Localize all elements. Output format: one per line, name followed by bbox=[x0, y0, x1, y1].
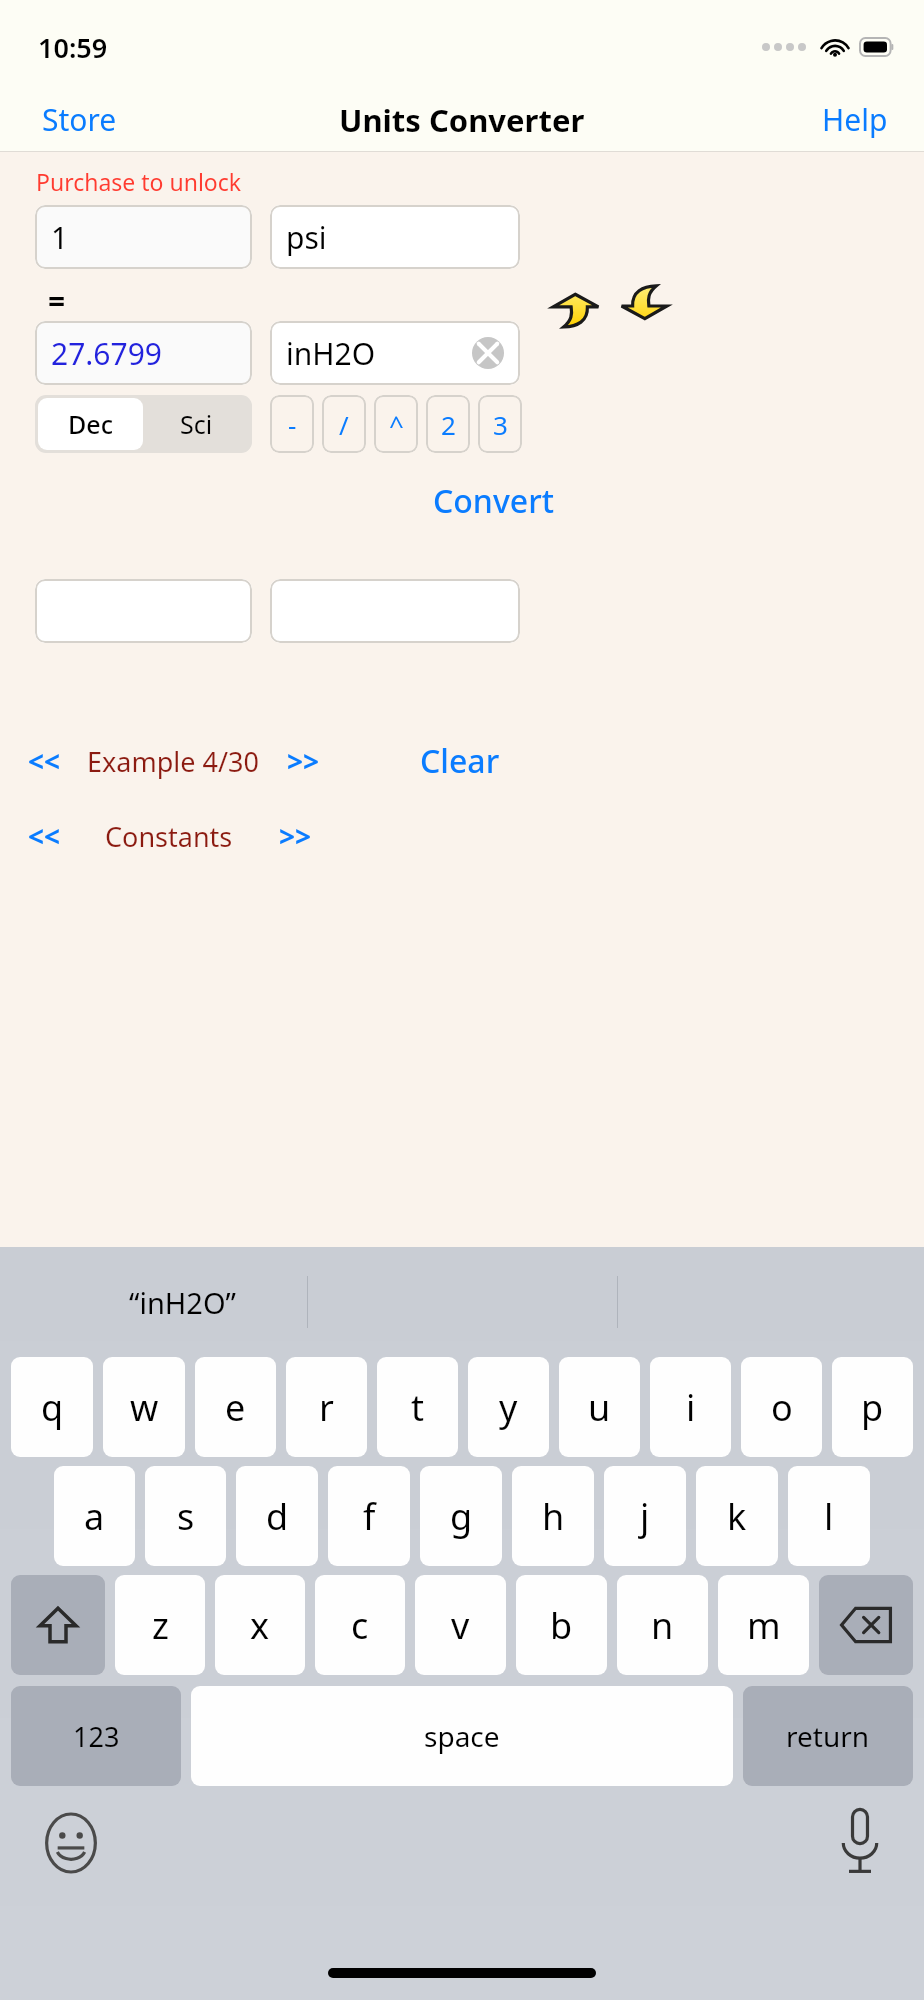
staticText: Clear bbox=[420, 739, 500, 783]
button[interactable]: << bbox=[22, 736, 67, 786]
button[interactable]: 27.6799 bbox=[35, 321, 252, 385]
staticText: 2 bbox=[441, 407, 456, 442]
button[interactable]: p bbox=[832, 1357, 913, 1457]
staticText: inH2O bbox=[286, 333, 376, 374]
button[interactable]: i bbox=[650, 1357, 731, 1457]
staticText: Convert bbox=[433, 479, 554, 523]
staticText: n bbox=[651, 1601, 674, 1650]
staticText: 3 bbox=[493, 407, 508, 442]
staticText: s bbox=[177, 1492, 195, 1541]
button[interactable]: << bbox=[22, 811, 67, 861]
staticText: o bbox=[771, 1383, 793, 1432]
staticText: psi bbox=[286, 217, 327, 258]
staticText: - bbox=[288, 407, 297, 442]
staticText: 123 bbox=[73, 1718, 120, 1755]
button[interactable]: Shift bbox=[11, 1575, 105, 1675]
button[interactable]: z bbox=[115, 1575, 205, 1675]
staticText: Purchase to unlock bbox=[36, 166, 242, 197]
button[interactable]: Swap units bbox=[552, 285, 668, 327]
button[interactable]: Store bbox=[0, 91, 159, 148]
button[interactable]: Dec bbox=[38, 398, 143, 450]
staticText: z bbox=[152, 1601, 169, 1650]
button[interactable]: y bbox=[468, 1357, 549, 1457]
button[interactable]: ^ bbox=[374, 395, 418, 453]
button[interactable]: j bbox=[604, 1466, 686, 1566]
staticText: c bbox=[351, 1601, 369, 1650]
staticText: l bbox=[824, 1492, 834, 1541]
staticText: a bbox=[84, 1492, 105, 1541]
button[interactable]: 2 bbox=[426, 395, 470, 453]
button[interactable]: c bbox=[315, 1575, 405, 1675]
staticText: u bbox=[588, 1383, 611, 1432]
button[interactable]: n bbox=[617, 1575, 708, 1675]
button[interactable]: m bbox=[718, 1575, 809, 1675]
staticText: w bbox=[130, 1383, 159, 1432]
staticText: Example 4/30 bbox=[87, 743, 259, 780]
staticText: “inH2O” bbox=[129, 1283, 236, 1322]
staticText: = bbox=[48, 280, 66, 321]
button[interactable]: o bbox=[741, 1357, 822, 1457]
button[interactable]: d bbox=[236, 1466, 318, 1566]
staticText: x bbox=[250, 1601, 270, 1650]
button[interactable]: 123 bbox=[11, 1686, 181, 1786]
staticText: Store bbox=[42, 99, 117, 140]
button[interactable]: h bbox=[512, 1466, 594, 1566]
staticText: d bbox=[266, 1492, 289, 1541]
button[interactable]: k bbox=[696, 1466, 778, 1566]
button[interactable]: b bbox=[516, 1575, 607, 1675]
button[interactable]: Convert bbox=[423, 473, 564, 529]
button[interactable]: Backspace bbox=[819, 1575, 913, 1675]
button[interactable]: psi bbox=[270, 205, 520, 269]
button[interactable]: inH2O bbox=[270, 321, 520, 385]
staticText: << bbox=[28, 817, 61, 855]
button[interactable]: q bbox=[11, 1357, 93, 1457]
button[interactable]: space bbox=[191, 1686, 733, 1786]
button[interactable]: a bbox=[54, 1466, 135, 1566]
button[interactable]: w bbox=[103, 1357, 185, 1457]
staticText: / bbox=[339, 407, 349, 442]
staticText: e bbox=[225, 1383, 246, 1432]
button[interactable]: Help bbox=[786, 91, 924, 148]
button[interactable]: 3 bbox=[478, 395, 522, 453]
staticText: >> bbox=[287, 742, 320, 780]
button[interactable]: Example 4/30 bbox=[87, 737, 259, 786]
button[interactable]: Clear unit bbox=[472, 337, 504, 369]
button[interactable]: e bbox=[195, 1357, 276, 1457]
button[interactable]: Dictation bbox=[838, 1808, 882, 1874]
staticText: >> bbox=[279, 817, 312, 855]
button[interactable]: / bbox=[322, 395, 366, 453]
button[interactable]: g bbox=[420, 1466, 502, 1566]
button[interactable]: Sci bbox=[143, 398, 249, 450]
staticText: Constants bbox=[105, 818, 233, 855]
button[interactable]: >> bbox=[273, 811, 318, 861]
button[interactable]: r bbox=[286, 1357, 367, 1457]
button[interactable]: >> bbox=[281, 736, 326, 786]
button[interactable] bbox=[35, 579, 252, 643]
staticText: space bbox=[424, 1717, 500, 1755]
button[interactable]: t bbox=[377, 1357, 458, 1457]
staticText: k bbox=[727, 1492, 747, 1541]
staticText: m bbox=[747, 1601, 781, 1650]
button[interactable]: f bbox=[328, 1466, 410, 1566]
button[interactable]: Constants bbox=[105, 812, 233, 861]
staticText: v bbox=[451, 1601, 470, 1650]
staticText: j bbox=[640, 1492, 650, 1541]
button[interactable]: return bbox=[743, 1686, 913, 1786]
button[interactable]: l bbox=[788, 1466, 870, 1566]
staticText: q bbox=[41, 1383, 64, 1432]
staticText: t bbox=[411, 1383, 424, 1432]
staticText: Dec bbox=[68, 407, 113, 441]
button[interactable]: 1 bbox=[35, 205, 252, 269]
button[interactable]: Emoji bbox=[42, 1814, 100, 1872]
button[interactable]: x bbox=[215, 1575, 305, 1675]
button[interactable]: v bbox=[415, 1575, 506, 1675]
button[interactable] bbox=[270, 579, 520, 643]
button[interactable]: - bbox=[270, 395, 314, 453]
staticText: 1 bbox=[51, 217, 69, 258]
button[interactable]: Clear bbox=[412, 733, 508, 789]
button[interactable]: u bbox=[559, 1357, 640, 1457]
staticText: h bbox=[542, 1492, 565, 1541]
staticText: r bbox=[319, 1383, 334, 1432]
staticText: i bbox=[686, 1383, 696, 1432]
button[interactable]: s bbox=[145, 1466, 226, 1566]
